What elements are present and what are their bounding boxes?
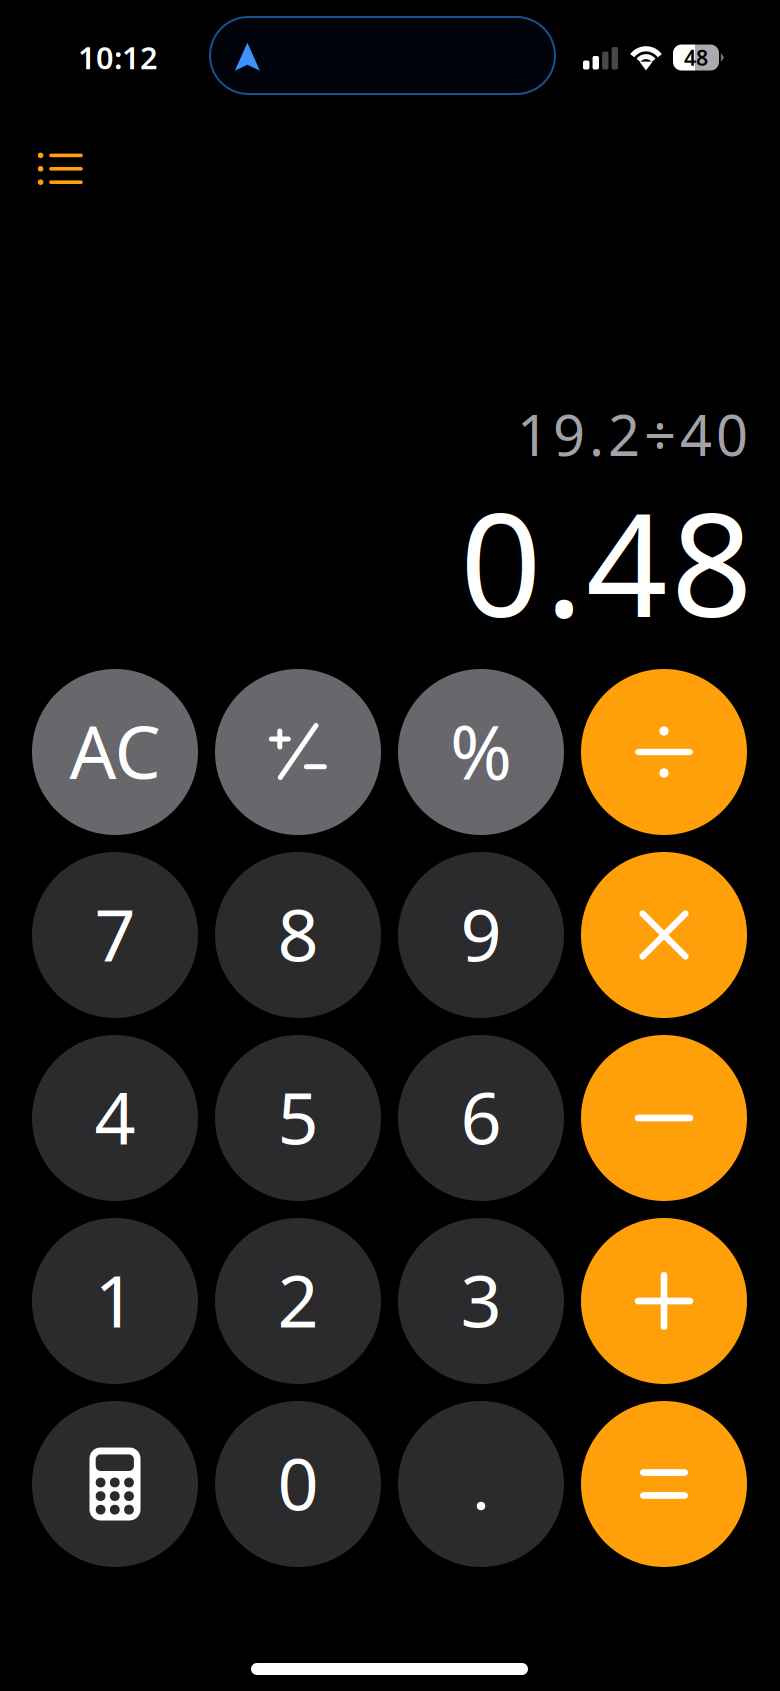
staticText: 4 — [94, 1069, 135, 1164]
button[interactable]: Equals — [581, 1401, 747, 1567]
button[interactable]: Divide — [581, 669, 747, 835]
button[interactable]: 9 — [398, 852, 564, 1018]
button[interactable]: 3 — [398, 1218, 564, 1384]
button[interactable]: Plus — [581, 1218, 747, 1384]
staticText: 3 — [460, 1252, 501, 1347]
staticText: 0.48 — [460, 467, 753, 656]
button[interactable]: Plus minus — [215, 669, 381, 835]
staticText: 19.2÷40 — [517, 397, 748, 471]
button[interactable]: History — [22, 137, 99, 201]
button[interactable]: Multiply — [581, 852, 747, 1018]
button[interactable]: 7 — [32, 852, 198, 1018]
staticText: 9 — [460, 886, 501, 981]
staticText: 0 — [277, 1435, 318, 1530]
button[interactable]: 4 — [32, 1035, 198, 1201]
button[interactable]: Calculator — [32, 1401, 198, 1567]
button[interactable]: AC — [32, 669, 198, 835]
staticText: AC — [69, 702, 160, 799]
staticText: 48 — [684, 43, 708, 72]
button[interactable]: 6 — [398, 1035, 564, 1201]
staticText: 1 — [94, 1252, 135, 1347]
staticText: 5 — [277, 1069, 318, 1164]
button[interactable]: 1 — [32, 1218, 198, 1384]
staticText: 7 — [94, 886, 135, 981]
button[interactable]: 2 — [215, 1218, 381, 1384]
staticText: 2 — [277, 1252, 318, 1347]
button[interactable]: % — [398, 669, 564, 835]
button[interactable]: 5 — [215, 1035, 381, 1201]
button[interactable]: 8 — [215, 852, 381, 1018]
button[interactable]: Decimal point — [398, 1401, 564, 1567]
button[interactable]: Minus — [581, 1035, 747, 1201]
staticText: % — [450, 701, 512, 800]
button[interactable]: 0 — [215, 1401, 381, 1567]
staticText: 6 — [460, 1069, 501, 1164]
staticText: 8 — [277, 886, 318, 981]
staticText: 10:12 — [78, 37, 158, 78]
